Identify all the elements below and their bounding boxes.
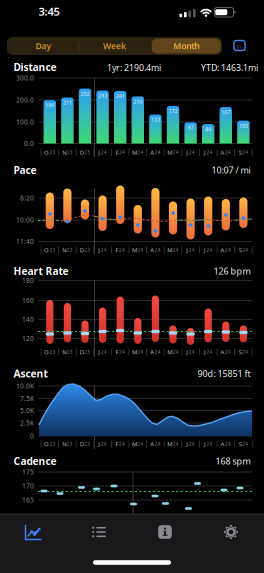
- staticText: 24: [119, 349, 125, 355]
- button[interactable]: Charts: [11, 517, 55, 547]
- staticText: O: [44, 246, 49, 254]
- staticText: 23: [49, 441, 55, 447]
- staticText: 167: [221, 108, 230, 116]
- staticText: Day: [35, 40, 51, 52]
- staticText: M: [167, 148, 172, 156]
- staticText: 0: [30, 431, 34, 440]
- staticText: 23: [49, 349, 55, 355]
- staticText: S: [239, 246, 242, 254]
- staticText: Distance: [13, 60, 56, 74]
- staticText: 24: [242, 349, 248, 355]
- staticText: D: [80, 246, 84, 254]
- staticText: N: [62, 348, 66, 356]
- staticText: 24: [206, 149, 212, 155]
- staticText: 97: [188, 124, 194, 131]
- button[interactable]: Day: [9, 37, 77, 55]
- staticText: A: [150, 348, 154, 356]
- staticText: 10:07 / mi: [211, 164, 250, 176]
- staticText: 252: [80, 90, 89, 97]
- staticText: 23: [67, 349, 73, 355]
- staticText: 24: [155, 247, 161, 253]
- staticText: 24: [206, 441, 212, 447]
- staticText: M: [167, 246, 172, 254]
- staticText: 24: [173, 149, 179, 155]
- staticText: 24: [189, 441, 195, 447]
- staticText: F: [115, 348, 118, 356]
- staticText: M: [132, 148, 137, 156]
- staticText: Week: [103, 40, 126, 52]
- staticText: 24: [138, 349, 144, 355]
- staticText: 24: [101, 247, 107, 253]
- staticText: 24: [173, 441, 179, 447]
- staticText: 120: [22, 334, 34, 343]
- button[interactable]: Info: [143, 517, 187, 547]
- staticText: 105: [239, 122, 248, 129]
- staticText: M: [167, 348, 172, 356]
- staticText: N: [62, 148, 66, 156]
- staticText: J: [204, 440, 206, 448]
- button[interactable]: Settings: [209, 517, 253, 547]
- staticText: 172: [168, 107, 177, 115]
- staticText: 23: [49, 247, 55, 253]
- staticText: J: [186, 440, 188, 448]
- staticText: A: [221, 148, 225, 156]
- button[interactable]: Month: [152, 38, 221, 53]
- staticText: 23: [67, 149, 73, 155]
- staticText: S: [239, 348, 242, 356]
- staticText: 3:45: [38, 4, 59, 19]
- staticText: N: [62, 440, 66, 448]
- staticText: 24: [101, 349, 107, 355]
- staticText: 24: [206, 247, 212, 253]
- button[interactable]: Calendar: [231, 37, 247, 53]
- staticText: 24: [225, 247, 231, 253]
- staticText: 24: [155, 349, 161, 355]
- staticText: Month: [173, 40, 199, 52]
- staticText: 175: [22, 467, 34, 476]
- staticText: 24: [242, 149, 248, 155]
- staticText: 24: [225, 441, 231, 447]
- staticText: 23: [49, 149, 55, 155]
- staticText: F: [115, 440, 118, 448]
- staticText: M: [167, 440, 172, 448]
- staticText: O: [44, 348, 49, 356]
- staticText: 10.0K: [16, 381, 34, 390]
- staticText: J: [186, 148, 188, 156]
- staticText: 23: [84, 247, 90, 253]
- staticText: 23: [84, 149, 90, 155]
- staticText: S: [239, 440, 242, 448]
- staticText: A: [150, 440, 154, 448]
- staticText: 24: [101, 441, 107, 447]
- staticText: YTD: 1463.1mi: [201, 61, 258, 73]
- staticText: 24: [138, 441, 144, 447]
- staticText: 133: [151, 116, 160, 123]
- staticText: 7.5K: [20, 394, 34, 403]
- staticText: 160: [22, 296, 34, 305]
- staticText: J: [98, 348, 100, 356]
- staticText: 23: [67, 247, 73, 253]
- staticText: J: [98, 246, 100, 254]
- staticText: 10:00: [16, 215, 34, 224]
- staticText: 23: [84, 441, 90, 447]
- staticText: J: [204, 246, 206, 254]
- staticText: J: [98, 148, 100, 156]
- button[interactable]: List: [77, 517, 121, 547]
- staticText: Cadence: [13, 454, 56, 468]
- staticText: A: [150, 246, 154, 254]
- staticText: 100.0: [16, 117, 34, 126]
- staticText: 200.0: [16, 95, 34, 104]
- staticText: 24: [119, 149, 125, 155]
- staticText: 24: [242, 247, 248, 253]
- staticText: J: [186, 246, 188, 254]
- staticText: 24: [119, 247, 125, 253]
- staticText: 180: [22, 276, 34, 285]
- staticText: J: [186, 348, 188, 356]
- staticText: 24: [189, 349, 195, 355]
- staticText: 211: [63, 99, 72, 106]
- staticText: 23: [67, 441, 73, 447]
- staticText: A: [221, 246, 225, 254]
- staticText: D: [80, 348, 84, 356]
- staticText: O: [44, 440, 49, 448]
- button[interactable]: Week: [80, 37, 148, 55]
- staticText: 300.0: [16, 73, 34, 82]
- staticText: 165: [22, 495, 34, 504]
